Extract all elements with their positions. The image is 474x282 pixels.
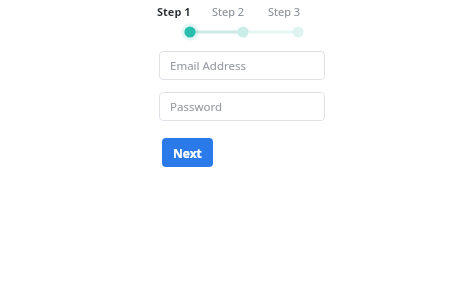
staticText: Step 1: [157, 4, 191, 18]
staticText: Step 3: [268, 4, 301, 18]
staticText: Next: [173, 145, 202, 161]
staticText: Email Address: [170, 58, 247, 74]
button[interactable]: Next: [162, 138, 213, 167]
staticText: Step 2: [212, 4, 245, 18]
button[interactable]: Email Address: [159, 51, 325, 80]
button[interactable]: Password: [159, 92, 325, 121]
button[interactable]: Step 2: [212, 4, 254, 18]
button[interactable]: Step 1: [157, 4, 199, 18]
staticText: Password: [170, 99, 223, 115]
button[interactable]: Step 3: [268, 4, 310, 18]
